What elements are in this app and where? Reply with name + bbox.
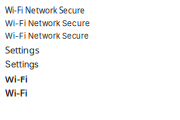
staticText: Wi-Fi xyxy=(5,88,27,99)
staticText: Wi-Fi Network Secure xyxy=(5,5,85,16)
staticText: Wi-Fi Network Secure xyxy=(5,31,89,41)
staticText: Settings xyxy=(5,44,39,56)
staticText: Settings xyxy=(5,59,39,70)
staticText: Wi-Fi xyxy=(5,73,28,85)
staticText: Wi-Fi Network Secure xyxy=(5,19,90,28)
